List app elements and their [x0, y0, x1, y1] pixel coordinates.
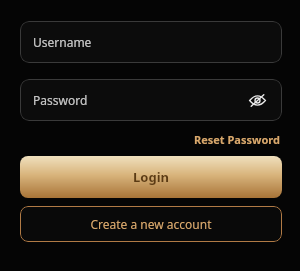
button[interactable]: Show password — [245, 88, 269, 112]
button[interactable]: Username — [20, 21, 282, 63]
staticText: Login — [133, 168, 169, 186]
button[interactable]: Create a new account — [20, 206, 282, 242]
button[interactable]: Password — [20, 79, 282, 121]
staticText: Reset Password — [194, 132, 280, 147]
staticText: Create a new account — [90, 216, 212, 232]
button[interactable]: Login — [20, 156, 282, 198]
staticText: Password — [33, 92, 88, 108]
staticText: Username — [33, 34, 92, 50]
button[interactable]: Reset Password — [192, 130, 282, 149]
